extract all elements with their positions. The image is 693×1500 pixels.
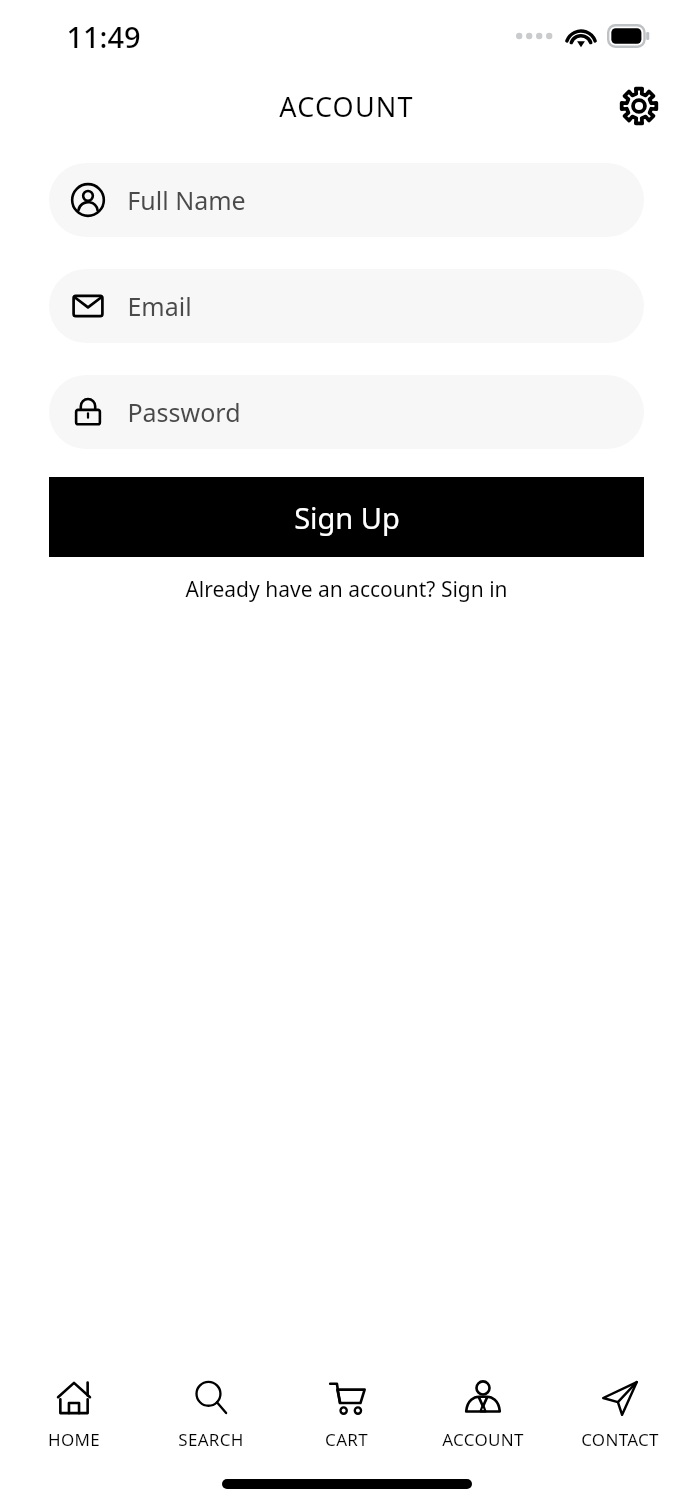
button[interactable]: Email <box>49 269 644 343</box>
staticText: Sign Up <box>294 498 400 537</box>
button[interactable]: HOME <box>11 1360 136 1468</box>
button[interactable]: Already have an account? Sign in <box>0 575 693 604</box>
staticText: HOME <box>48 1428 100 1451</box>
button[interactable]: CART <box>284 1360 409 1468</box>
staticText: ACCOUNT <box>442 1428 524 1451</box>
staticText: Password <box>127 395 241 429</box>
staticText: Email <box>127 289 192 323</box>
button[interactable]: CONTACT <box>557 1360 682 1468</box>
staticText: 11:49 <box>66 17 141 56</box>
button[interactable]: Password <box>49 375 644 449</box>
staticText: SEARCH <box>178 1428 244 1451</box>
staticText: CONTACT <box>581 1428 659 1451</box>
staticText: Full Name <box>127 183 246 217</box>
button[interactable]: Settings <box>611 78 667 134</box>
staticText: CART <box>325 1428 368 1451</box>
staticText: Already have an account? Sign in <box>185 575 508 604</box>
button[interactable]: ACCOUNT <box>420 1360 545 1468</box>
button[interactable]: Full Name <box>49 163 644 237</box>
staticText: ACCOUNT <box>279 88 414 125</box>
button[interactable]: Sign Up <box>49 477 644 557</box>
button[interactable]: SEARCH <box>148 1360 273 1468</box>
